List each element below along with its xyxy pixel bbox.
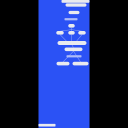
button[interactable]: Node xyxy=(72,62,88,65)
button[interactable]: Node xyxy=(68,24,75,28)
button[interactable]: Node xyxy=(57,41,86,45)
button[interactable]: Node xyxy=(56,31,64,35)
button[interactable]: Node xyxy=(68,31,75,35)
button[interactable]: Node xyxy=(64,47,82,51)
button[interactable]: Node xyxy=(78,31,86,35)
button[interactable]: Node xyxy=(56,62,69,65)
